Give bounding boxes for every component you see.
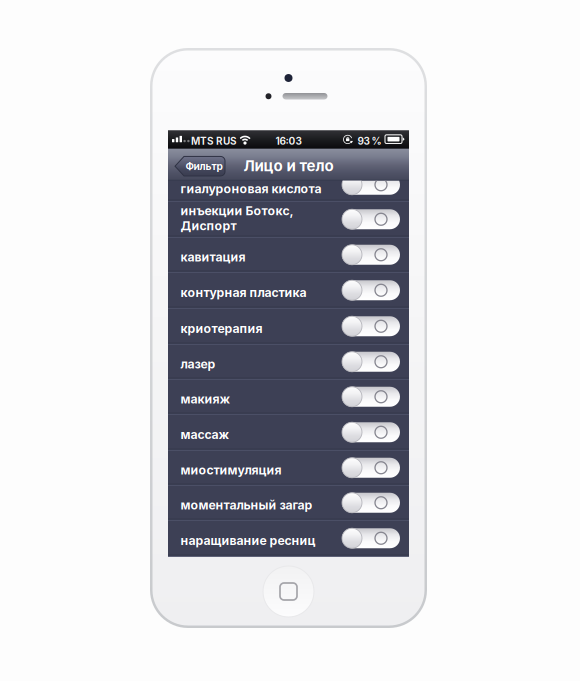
button[interactable]: наращивание ресниц [168,521,409,557]
staticText: кавитация [180,249,245,264]
staticText: Фильтр [185,160,222,172]
staticText: Лицо и тело [243,157,333,175]
staticText: 16:03 [275,135,301,147]
button[interactable]: криотерапия [168,309,409,345]
button[interactable]: контурная пластика [168,273,409,309]
button[interactable]: миостимуляция [168,451,409,486]
staticText: Диспорт [180,218,236,233]
staticText: наращивание ресниц [180,533,315,548]
staticText: 93 % [358,135,382,147]
staticText: криотерапия [180,321,262,336]
staticText: моментальный загар [180,497,312,512]
staticText: гиалуроновая кислота [180,181,321,196]
button[interactable]: гиалуроновая кислота [168,181,409,202]
staticText: миостимуляция [180,462,281,477]
staticText: контурная пластика [180,285,306,300]
button[interactable]: Фильтр [175,156,225,176]
button[interactable]: лазер [168,345,409,380]
staticText: инъекции Ботокс, [180,203,293,218]
button[interactable]: Home [263,566,314,617]
button[interactable]: массаж [168,415,409,451]
staticText: макияж [180,391,230,406]
button[interactable]: макияж [168,380,409,415]
staticText: массаж [180,427,229,442]
button[interactable]: кавитация [168,238,409,273]
staticText: лазер [180,356,215,371]
button[interactable]: моментальный загар [168,486,409,521]
button[interactable]: инъекции Ботокс, [168,202,409,238]
staticText: MTS RUS [191,135,237,147]
